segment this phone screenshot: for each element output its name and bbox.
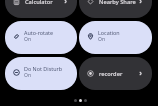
button[interactable]: recorder [79, 57, 152, 90]
staticText: On [24, 36, 31, 43]
button[interactable]: Location [79, 21, 152, 54]
staticText: Nearby Share [99, 0, 138, 6]
staticText: Do Not Disturb [24, 65, 63, 72]
staticText: On [24, 72, 31, 79]
staticText: Location [98, 29, 120, 36]
staticText: Auto-rotate [24, 29, 54, 36]
button[interactable]: Nearby Share [79, 0, 152, 18]
button[interactable]: Auto-rotate [5, 21, 77, 54]
button[interactable]: Do Not Disturb [5, 57, 77, 90]
staticText: On [98, 36, 105, 43]
staticText: recorder [99, 70, 138, 78]
button[interactable]: Calculator [5, 0, 77, 18]
staticText: Calculator [25, 0, 63, 6]
